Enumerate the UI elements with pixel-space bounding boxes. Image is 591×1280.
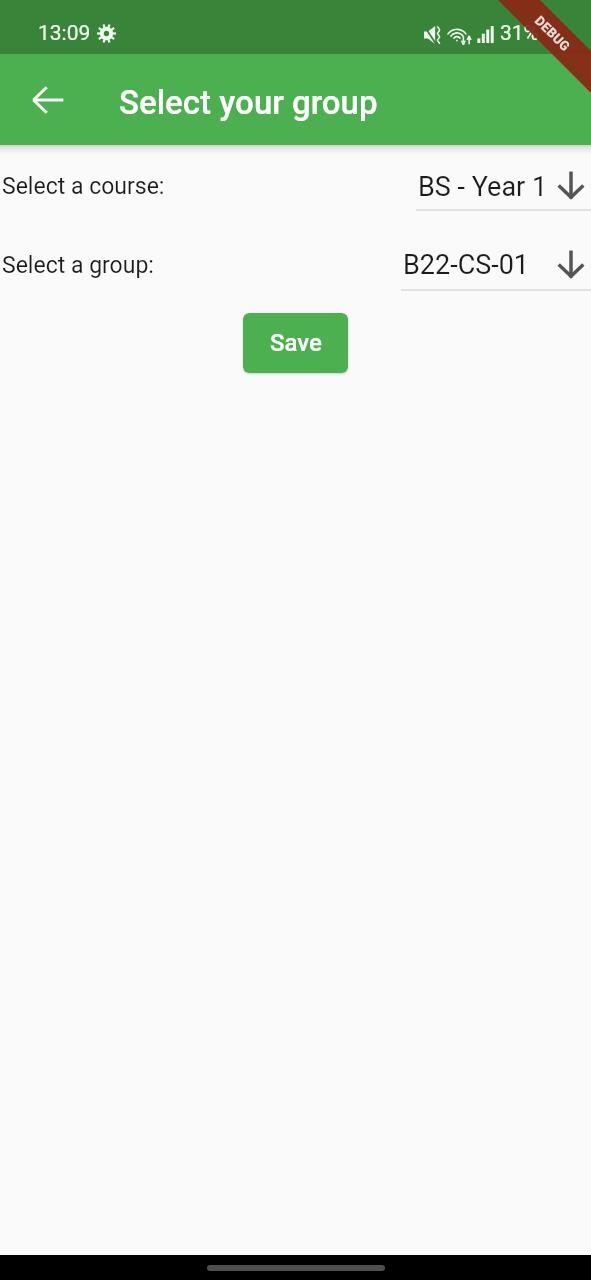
button[interactable] bbox=[395, 241, 591, 287]
button[interactable]: Navigate back bbox=[24, 76, 72, 124]
staticText: B22-CS-01 bbox=[403, 249, 530, 281]
staticText: Select a course: bbox=[2, 173, 165, 200]
staticText: Select a group: bbox=[2, 252, 154, 279]
staticText: Select your group bbox=[119, 83, 378, 122]
button[interactable] bbox=[410, 162, 591, 208]
staticText: BS - Year 1 bbox=[418, 171, 548, 203]
staticText: 13:09 bbox=[38, 21, 91, 46]
staticText: 31% bbox=[500, 21, 539, 46]
staticText: Save bbox=[270, 329, 322, 357]
staticText: DEBUG bbox=[532, 13, 573, 54]
button[interactable]: Save bbox=[243, 313, 348, 373]
